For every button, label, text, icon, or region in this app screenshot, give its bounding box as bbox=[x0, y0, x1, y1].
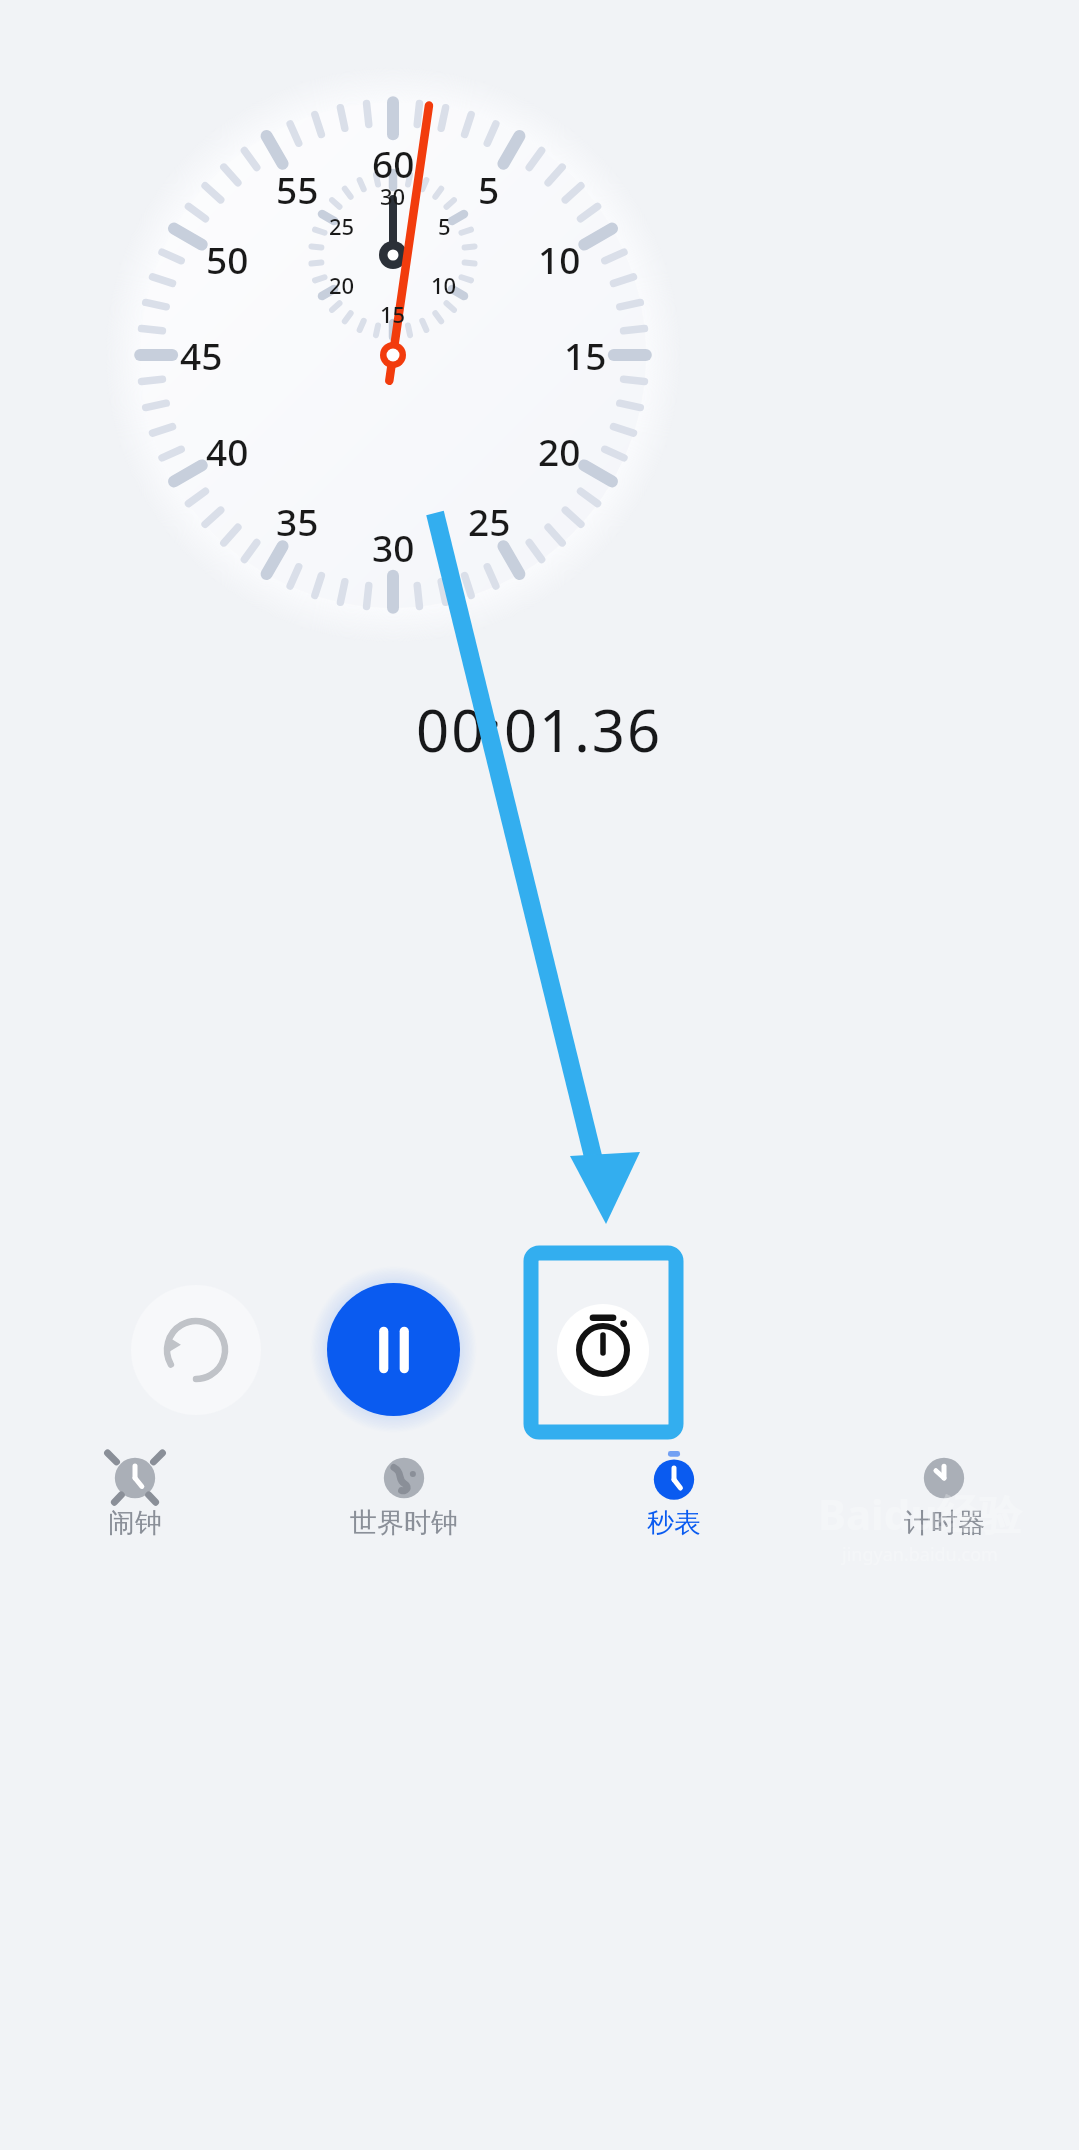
staticText: 世界时钟 bbox=[350, 1506, 458, 1540]
staticText: 5 bbox=[438, 211, 451, 241]
staticText: Baidu经验 bbox=[818, 1485, 1022, 1542]
staticText: 10 bbox=[538, 234, 581, 284]
staticText: 60 bbox=[372, 138, 415, 188]
staticText: 35 bbox=[276, 496, 319, 546]
staticText: 10 bbox=[431, 270, 457, 300]
button[interactable]: 闹钟 bbox=[0, 1450, 269, 1570]
staticText: 30 bbox=[372, 522, 415, 572]
staticText: 20 bbox=[329, 270, 355, 300]
staticText: 45 bbox=[180, 330, 223, 380]
staticText: 40 bbox=[206, 426, 249, 476]
staticText: 5 bbox=[478, 164, 500, 214]
button[interactable]: 秒表 bbox=[539, 1450, 809, 1570]
button[interactable]: 计时器 bbox=[809, 1450, 1079, 1570]
staticText: 25 bbox=[329, 211, 355, 241]
staticText: 15 bbox=[564, 330, 607, 380]
staticText: 秒表 bbox=[647, 1506, 701, 1540]
staticText: 25 bbox=[468, 496, 511, 546]
staticText: 闹钟 bbox=[108, 1506, 162, 1540]
button[interactable]: 世界时钟 bbox=[269, 1450, 539, 1570]
staticText: 00:01.36 bbox=[416, 690, 663, 769]
staticText: 20 bbox=[538, 426, 581, 476]
button[interactable]: Reset bbox=[131, 1285, 261, 1415]
staticText: 计时器 bbox=[904, 1506, 985, 1540]
staticText: 55 bbox=[276, 164, 319, 214]
button[interactable]: Pause bbox=[327, 1283, 460, 1416]
staticText: 15 bbox=[380, 299, 406, 329]
staticText: 50 bbox=[206, 234, 249, 284]
staticText: 30 bbox=[380, 181, 406, 211]
